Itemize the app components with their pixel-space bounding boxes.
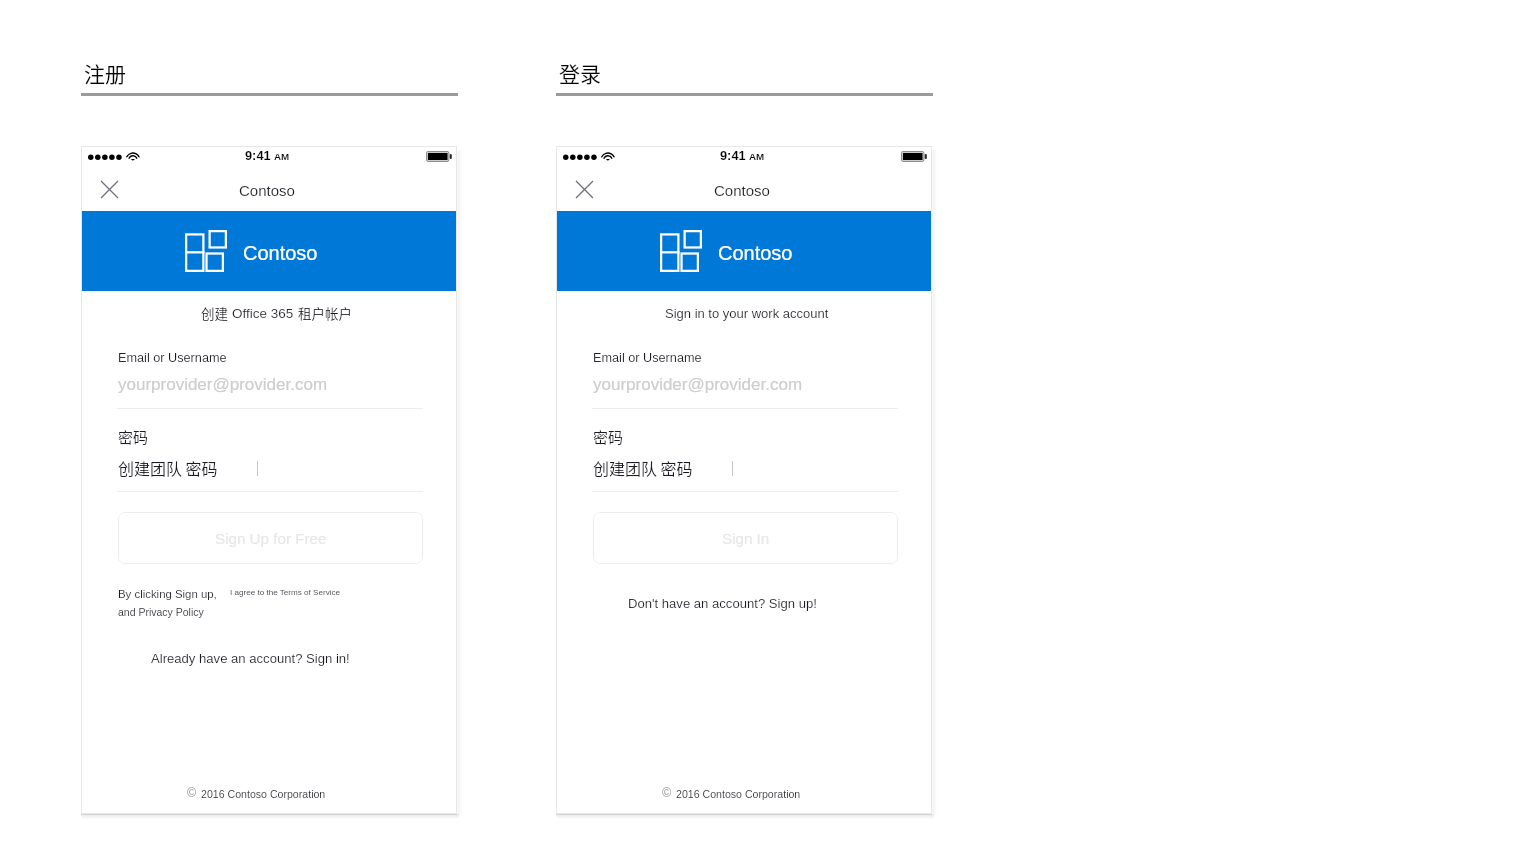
button[interactable]: 密码 [592, 424, 898, 492]
staticText: Email or Username [118, 351, 227, 365]
staticText: Contoso [714, 182, 770, 199]
staticText: Email or Username [593, 351, 702, 365]
staticText: By clicking Sign up, [118, 588, 217, 601]
staticText: AM [274, 151, 290, 162]
staticText: 登录 [559, 58, 601, 88]
staticText: 密码 [593, 426, 624, 448]
staticText: © [662, 786, 672, 800]
button[interactable]: Sign Up for Free [118, 512, 423, 564]
staticText: 2016 Contoso Corporation [201, 788, 326, 800]
staticText: 租户帐户 [298, 303, 352, 323]
button[interactable]: Sign In [593, 512, 898, 564]
staticText: 密码 [118, 426, 149, 448]
button[interactable]: Already have an account? Sign in! [151, 651, 350, 666]
button[interactable]: 密码 [117, 424, 423, 492]
staticText: Sign in to your work account [665, 306, 829, 321]
staticText: Office 365 [232, 306, 294, 321]
staticText: AM [749, 151, 765, 162]
button[interactable]: Email or Username [592, 346, 898, 409]
button[interactable]: Close [94, 174, 125, 205]
button[interactable]: Email or Username [117, 346, 423, 409]
staticText: yourprovider@provider.com [118, 375, 328, 394]
staticText: 9:41 [720, 148, 746, 162]
staticText: 2016 Contoso Corporation [676, 788, 801, 800]
button[interactable]: Contoso [81, 211, 457, 291]
staticText: 9:41 [245, 148, 271, 162]
staticText: Sign In [722, 530, 770, 547]
staticText: 创建 [201, 303, 228, 323]
staticText: Contoso [243, 242, 318, 264]
staticText: 注册 [84, 58, 126, 88]
button[interactable]: I agree to the Terms of Service [230, 588, 341, 597]
staticText: I agree to the Terms of Service [230, 588, 341, 597]
staticText: Already have an account? Sign in! [151, 651, 350, 666]
staticText: and Privacy Policy [118, 606, 204, 618]
button[interactable]: Contoso [556, 211, 932, 291]
staticText: 创建团队 密码 [593, 456, 693, 479]
staticText: Contoso [718, 242, 793, 264]
staticText: © [187, 786, 197, 800]
staticText: Don't have an account? Sign up! [628, 596, 817, 611]
staticText: Sign Up for Free [215, 530, 327, 547]
staticText: 创建团队 密码 [118, 456, 218, 479]
staticText: yourprovider@provider.com [593, 375, 803, 394]
staticText: Contoso [239, 182, 295, 199]
button[interactable]: Don't have an account? Sign up! [628, 596, 817, 611]
button[interactable]: Close [569, 174, 600, 205]
